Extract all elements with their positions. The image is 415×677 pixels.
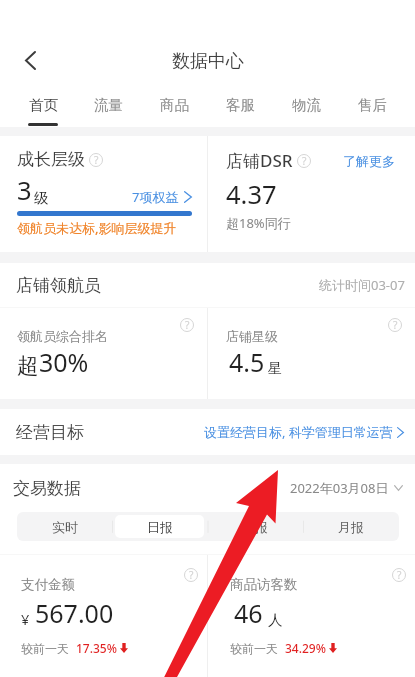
button[interactable]: About 商品访客数 [208,568,406,582]
staticText: 星 [268,360,282,378]
staticText: 流量 [94,96,123,114]
staticText: 567.00 [35,596,114,630]
staticText: 售后 [358,96,387,114]
button[interactable]: 7项权益 [132,188,192,208]
button[interactable]: About 支付金额 [0,568,198,582]
staticText: 商品访客数 [230,576,298,593]
staticText: 店铺领航员 [16,275,101,296]
button[interactable]: About star [208,318,402,332]
staticText: 7项权益 [132,188,179,206]
staticText: 周报 [242,519,268,535]
staticText: 30% [39,345,89,379]
staticText: 日报 [147,519,173,535]
staticText: 店铺星级 [226,328,278,344]
button[interactable]: About rank [0,318,194,332]
staticText: 月报 [338,519,364,535]
staticText: 2022年03月08日 [290,479,389,497]
staticText: ? [393,318,398,332]
button[interactable]: 流量 [75,83,141,127]
staticText: 46 [234,596,263,630]
staticText: 超 [17,352,39,379]
staticText: 17.35% [76,640,117,656]
staticText: 交易数据 [13,478,81,499]
button[interactable]: 首页 [10,83,75,127]
staticText: ? [397,568,402,582]
staticText: 商品 [160,96,189,114]
staticText: 经营目标 [16,422,84,443]
button[interactable]: 月报 [306,515,396,538]
staticText: 3 [17,173,32,208]
staticText: 4.5 [229,345,265,379]
staticText: 支付金额 [21,576,75,593]
staticText: 较前一天 [230,641,278,656]
staticText: 客服 [226,96,255,114]
button[interactable]: 售后 [339,83,405,127]
staticText: ? [302,154,307,168]
staticText: ¥ [21,609,30,629]
staticText: 领航员综合排名 [17,328,108,344]
staticText: 首页 [29,96,58,114]
staticText: 实时 [52,519,78,535]
staticText: 超18%同行 [226,214,291,232]
button[interactable]: 客服 [207,83,273,127]
staticText: 店铺DSR [226,149,293,172]
button[interactable]: 物流 [273,83,339,127]
staticText: 4.37 [226,177,277,212]
staticText: 领航员未达标,影响层级提升 [17,219,177,237]
button[interactable]: 日报 [115,515,204,538]
button[interactable]: 实时 [20,515,109,538]
staticText: 成长层级 [17,149,85,170]
staticText: 物流 [292,96,321,114]
staticText: 人 [268,611,283,629]
button[interactable]: 周报 [210,515,300,538]
staticText: ? [189,568,194,582]
button[interactable]: Back [8,38,52,82]
staticText: 34.29% [285,640,326,656]
staticText: ? [185,318,190,332]
staticText: 统计时间03-07 [319,276,405,294]
staticText: ? [94,153,99,167]
staticText: 较前一天 [21,641,69,656]
button[interactable]: 2022年03月08日 [290,479,403,497]
button[interactable]: 了解更多 [343,153,395,169]
staticText: 级 [34,189,49,207]
button[interactable]: 经营目标 [0,409,415,455]
staticText: 数据中心 [172,50,244,73]
staticText: 设置经营目标, 科学管理日常运营 [204,423,393,441]
button[interactable]: 商品 [141,83,207,127]
